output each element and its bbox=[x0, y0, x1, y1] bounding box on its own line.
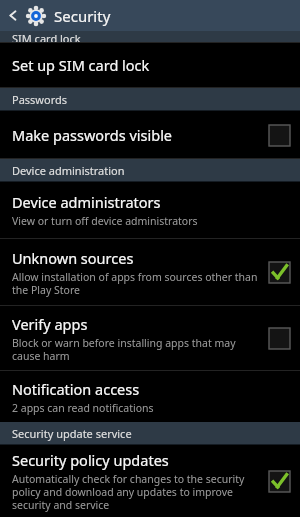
button[interactable]: Device administrators bbox=[0, 182, 300, 238]
staticText: 2 apps can read notifications bbox=[12, 401, 154, 415]
button[interactable]: Notification access bbox=[0, 371, 300, 422]
staticText: SIM card lock bbox=[12, 31, 81, 42]
staticText: Make passwords visible bbox=[12, 125, 173, 145]
staticText: Automatically check for changes to the s… bbox=[12, 472, 260, 512]
button[interactable]: Back bbox=[0, 0, 26, 31]
staticText: View or turn off device administrators bbox=[12, 214, 198, 228]
button[interactable]: Unchecked bbox=[268, 327, 290, 349]
button[interactable]: Checked bbox=[268, 261, 290, 283]
staticText: Passwords bbox=[12, 92, 68, 107]
button[interactable]: Make passwords visible bbox=[0, 111, 300, 158]
button[interactable]: Unknown sources bbox=[0, 239, 300, 305]
staticText: Security bbox=[54, 6, 111, 26]
button[interactable]: Checked bbox=[268, 470, 290, 492]
button[interactable]: Unchecked bbox=[268, 124, 290, 146]
staticText: Verify apps bbox=[12, 314, 88, 334]
staticText: Notification access bbox=[12, 379, 140, 399]
staticText: Allow installation of apps from sources … bbox=[12, 270, 260, 297]
button[interactable]: Verify apps bbox=[0, 306, 300, 370]
staticText: Unknown sources bbox=[12, 248, 134, 268]
button[interactable]: Set up SIM card lock bbox=[0, 43, 300, 87]
staticText: Security policy updates bbox=[12, 450, 169, 470]
staticText: Device administration bbox=[12, 163, 125, 178]
staticText: Block or warn before installing apps tha… bbox=[12, 336, 260, 363]
staticText: Set up SIM card lock bbox=[12, 55, 150, 75]
staticText: Security update service bbox=[12, 426, 132, 441]
button[interactable]: Security policy updates bbox=[0, 445, 300, 517]
staticText: Device administrators bbox=[12, 192, 161, 212]
